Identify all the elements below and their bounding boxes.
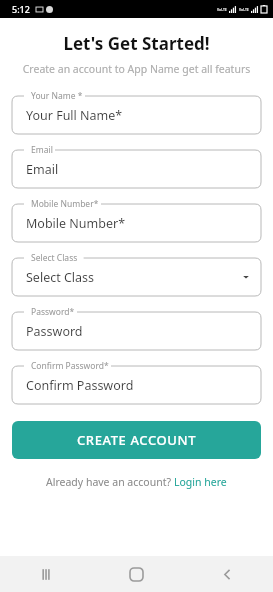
staticText: Select Class <box>26 269 95 286</box>
button[interactable]: Your Name * <box>12 90 261 134</box>
staticText: Already have an account? <box>46 475 174 489</box>
staticText: Email <box>26 161 59 178</box>
button[interactable]: CREATE ACCOUNT <box>12 421 261 459</box>
staticText: CREATE ACCOUNT <box>77 431 197 449</box>
staticText: Password <box>26 323 83 340</box>
staticText: Email <box>31 144 53 156</box>
button[interactable]: Password* <box>12 306 261 350</box>
button[interactable]: Login here <box>174 475 227 489</box>
button[interactable]: Home <box>91 556 182 592</box>
staticText: Let's Get Started! <box>12 32 261 55</box>
staticText: Mobile Number* <box>26 215 126 232</box>
button[interactable]: Recent apps <box>0 556 91 592</box>
staticText: Your Full Name* <box>26 107 123 124</box>
button[interactable]: Confirm Password* <box>12 360 261 404</box>
button[interactable]: Email <box>12 144 261 188</box>
staticText: Login here <box>174 475 227 489</box>
staticText: Confirm Password <box>26 377 134 394</box>
staticText: 5:12 <box>12 3 30 15</box>
staticText: Create an account to App Name get all fe… <box>20 62 253 76</box>
staticText: Password* <box>31 306 75 318</box>
staticText: Mobile Number* <box>31 198 99 210</box>
staticText: Your Name * <box>31 90 83 102</box>
staticText: Confirm Password* <box>31 360 109 372</box>
staticText: Select Class <box>31 252 78 264</box>
button[interactable]: Mobile Number* <box>12 198 261 242</box>
button[interactable]: Select Class <box>12 252 261 296</box>
button[interactable]: Back <box>182 556 273 592</box>
staticText: VoLTE <box>217 7 227 12</box>
staticText: VoLTE <box>239 7 249 12</box>
